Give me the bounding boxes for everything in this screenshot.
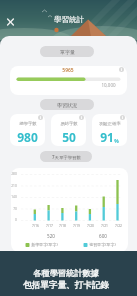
staticText: 7天單字學習數 xyxy=(52,154,81,160)
button[interactable] xyxy=(38,115,43,120)
staticText: 7/17 xyxy=(46,223,53,227)
staticText: 7/16 xyxy=(32,223,39,227)
staticText: 單字量 xyxy=(60,49,75,55)
staticText: 10,000 xyxy=(101,82,116,88)
button[interactable] xyxy=(120,115,125,120)
staticText: 520 xyxy=(47,233,55,239)
staticText: 91 xyxy=(100,129,114,145)
button[interactable]: 易錯字數 xyxy=(51,114,86,146)
button[interactable]: 280 xyxy=(11,168,128,251)
staticText: 50 xyxy=(62,129,76,145)
staticText: 7/22 xyxy=(115,223,122,227)
staticText: 學習狀況 xyxy=(57,102,77,108)
staticText: 複習單字(單字) xyxy=(89,242,116,247)
staticText: 包括單字量、打卡記錄 xyxy=(23,280,109,291)
button[interactable]: 5965 xyxy=(10,66,127,95)
button[interactable]: 7天單字學習數 xyxy=(40,151,92,162)
staticText: 總學字數 xyxy=(19,121,37,126)
staticText: 各種學習統計數據 xyxy=(33,268,99,278)
staticText: 210 xyxy=(11,184,17,188)
staticText: 7/18 xyxy=(59,223,66,227)
staticText: 70 xyxy=(13,207,17,211)
staticText: 600 xyxy=(99,233,107,239)
button[interactable] xyxy=(79,115,84,120)
staticText: 0 xyxy=(15,218,17,222)
staticText: 測驗正確率 xyxy=(99,121,121,126)
staticText: 新學單字(單字) xyxy=(31,242,58,247)
staticText: 7/19 xyxy=(73,223,80,227)
staticText: 140 xyxy=(11,195,17,199)
staticText: 980 xyxy=(17,129,38,145)
staticText: 7/21 xyxy=(101,223,108,227)
button[interactable]: 學習狀況 xyxy=(40,99,94,110)
staticText: 280 xyxy=(11,172,17,176)
button[interactable] xyxy=(119,67,124,72)
staticText: % xyxy=(114,138,119,145)
button[interactable]: 總學字數 xyxy=(10,114,45,146)
staticText: 7/20 xyxy=(87,223,94,227)
button[interactable] xyxy=(4,15,18,29)
staticText: 學習統計 xyxy=(54,15,84,24)
staticText: 5965 xyxy=(62,67,74,74)
button[interactable]: 單字量 xyxy=(40,46,94,57)
staticText: 易錯字數 xyxy=(60,121,78,126)
button[interactable]: 測驗正確率 xyxy=(92,114,127,146)
